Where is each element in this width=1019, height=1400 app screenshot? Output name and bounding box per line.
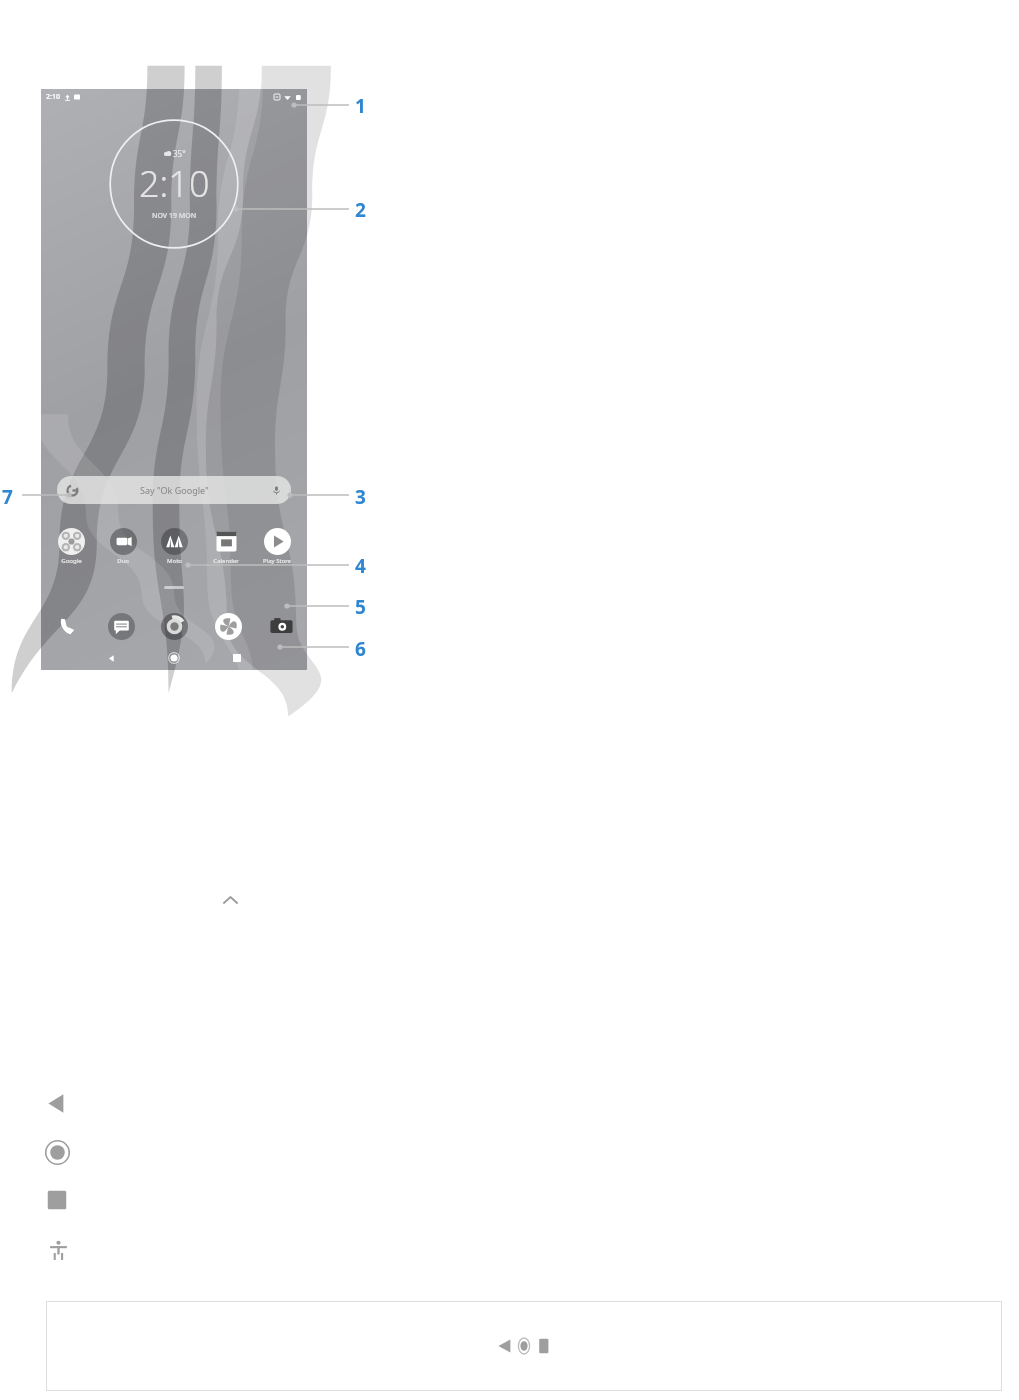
staticText: 6	[355, 636, 366, 662]
staticText: 5	[355, 594, 366, 620]
staticText: 7	[2, 484, 13, 510]
button[interactable]: Chrome	[156, 608, 192, 644]
staticText: 2:10	[139, 159, 210, 208]
button[interactable]: Duo	[99, 528, 147, 565]
staticText: Say "Ok Google"	[140, 484, 209, 496]
button[interactable]: Play Store	[253, 528, 301, 565]
button[interactable]: Say "Ok Google"	[57, 476, 291, 504]
staticText: 2:10	[46, 92, 60, 102]
staticText: 2	[355, 197, 366, 223]
button[interactable]: Phone	[49, 608, 85, 644]
button[interactable]: Camera	[263, 608, 299, 644]
button[interactable]: Calendar	[202, 528, 250, 565]
button[interactable]: Back	[100, 648, 122, 668]
staticText: Calendar	[213, 557, 239, 565]
button[interactable]: Home	[163, 648, 185, 668]
button[interactable]: Google	[47, 528, 95, 565]
staticText: Moto	[167, 557, 182, 565]
staticText: 3	[355, 484, 366, 510]
button[interactable]: Moto	[150, 528, 198, 565]
staticText: Google	[61, 557, 82, 565]
staticText: 4	[355, 553, 366, 579]
staticText: Play Store	[263, 557, 291, 565]
button[interactable]: Recent apps	[226, 648, 248, 668]
button[interactable]: 35°	[109, 119, 239, 249]
staticText: NOV 19 MON	[152, 211, 197, 221]
staticText: 35°	[173, 148, 186, 159]
button[interactable]: Photos	[210, 608, 246, 644]
button[interactable]: Messages	[103, 608, 139, 644]
staticText: Duo	[117, 557, 129, 565]
staticText: 1	[355, 93, 366, 119]
